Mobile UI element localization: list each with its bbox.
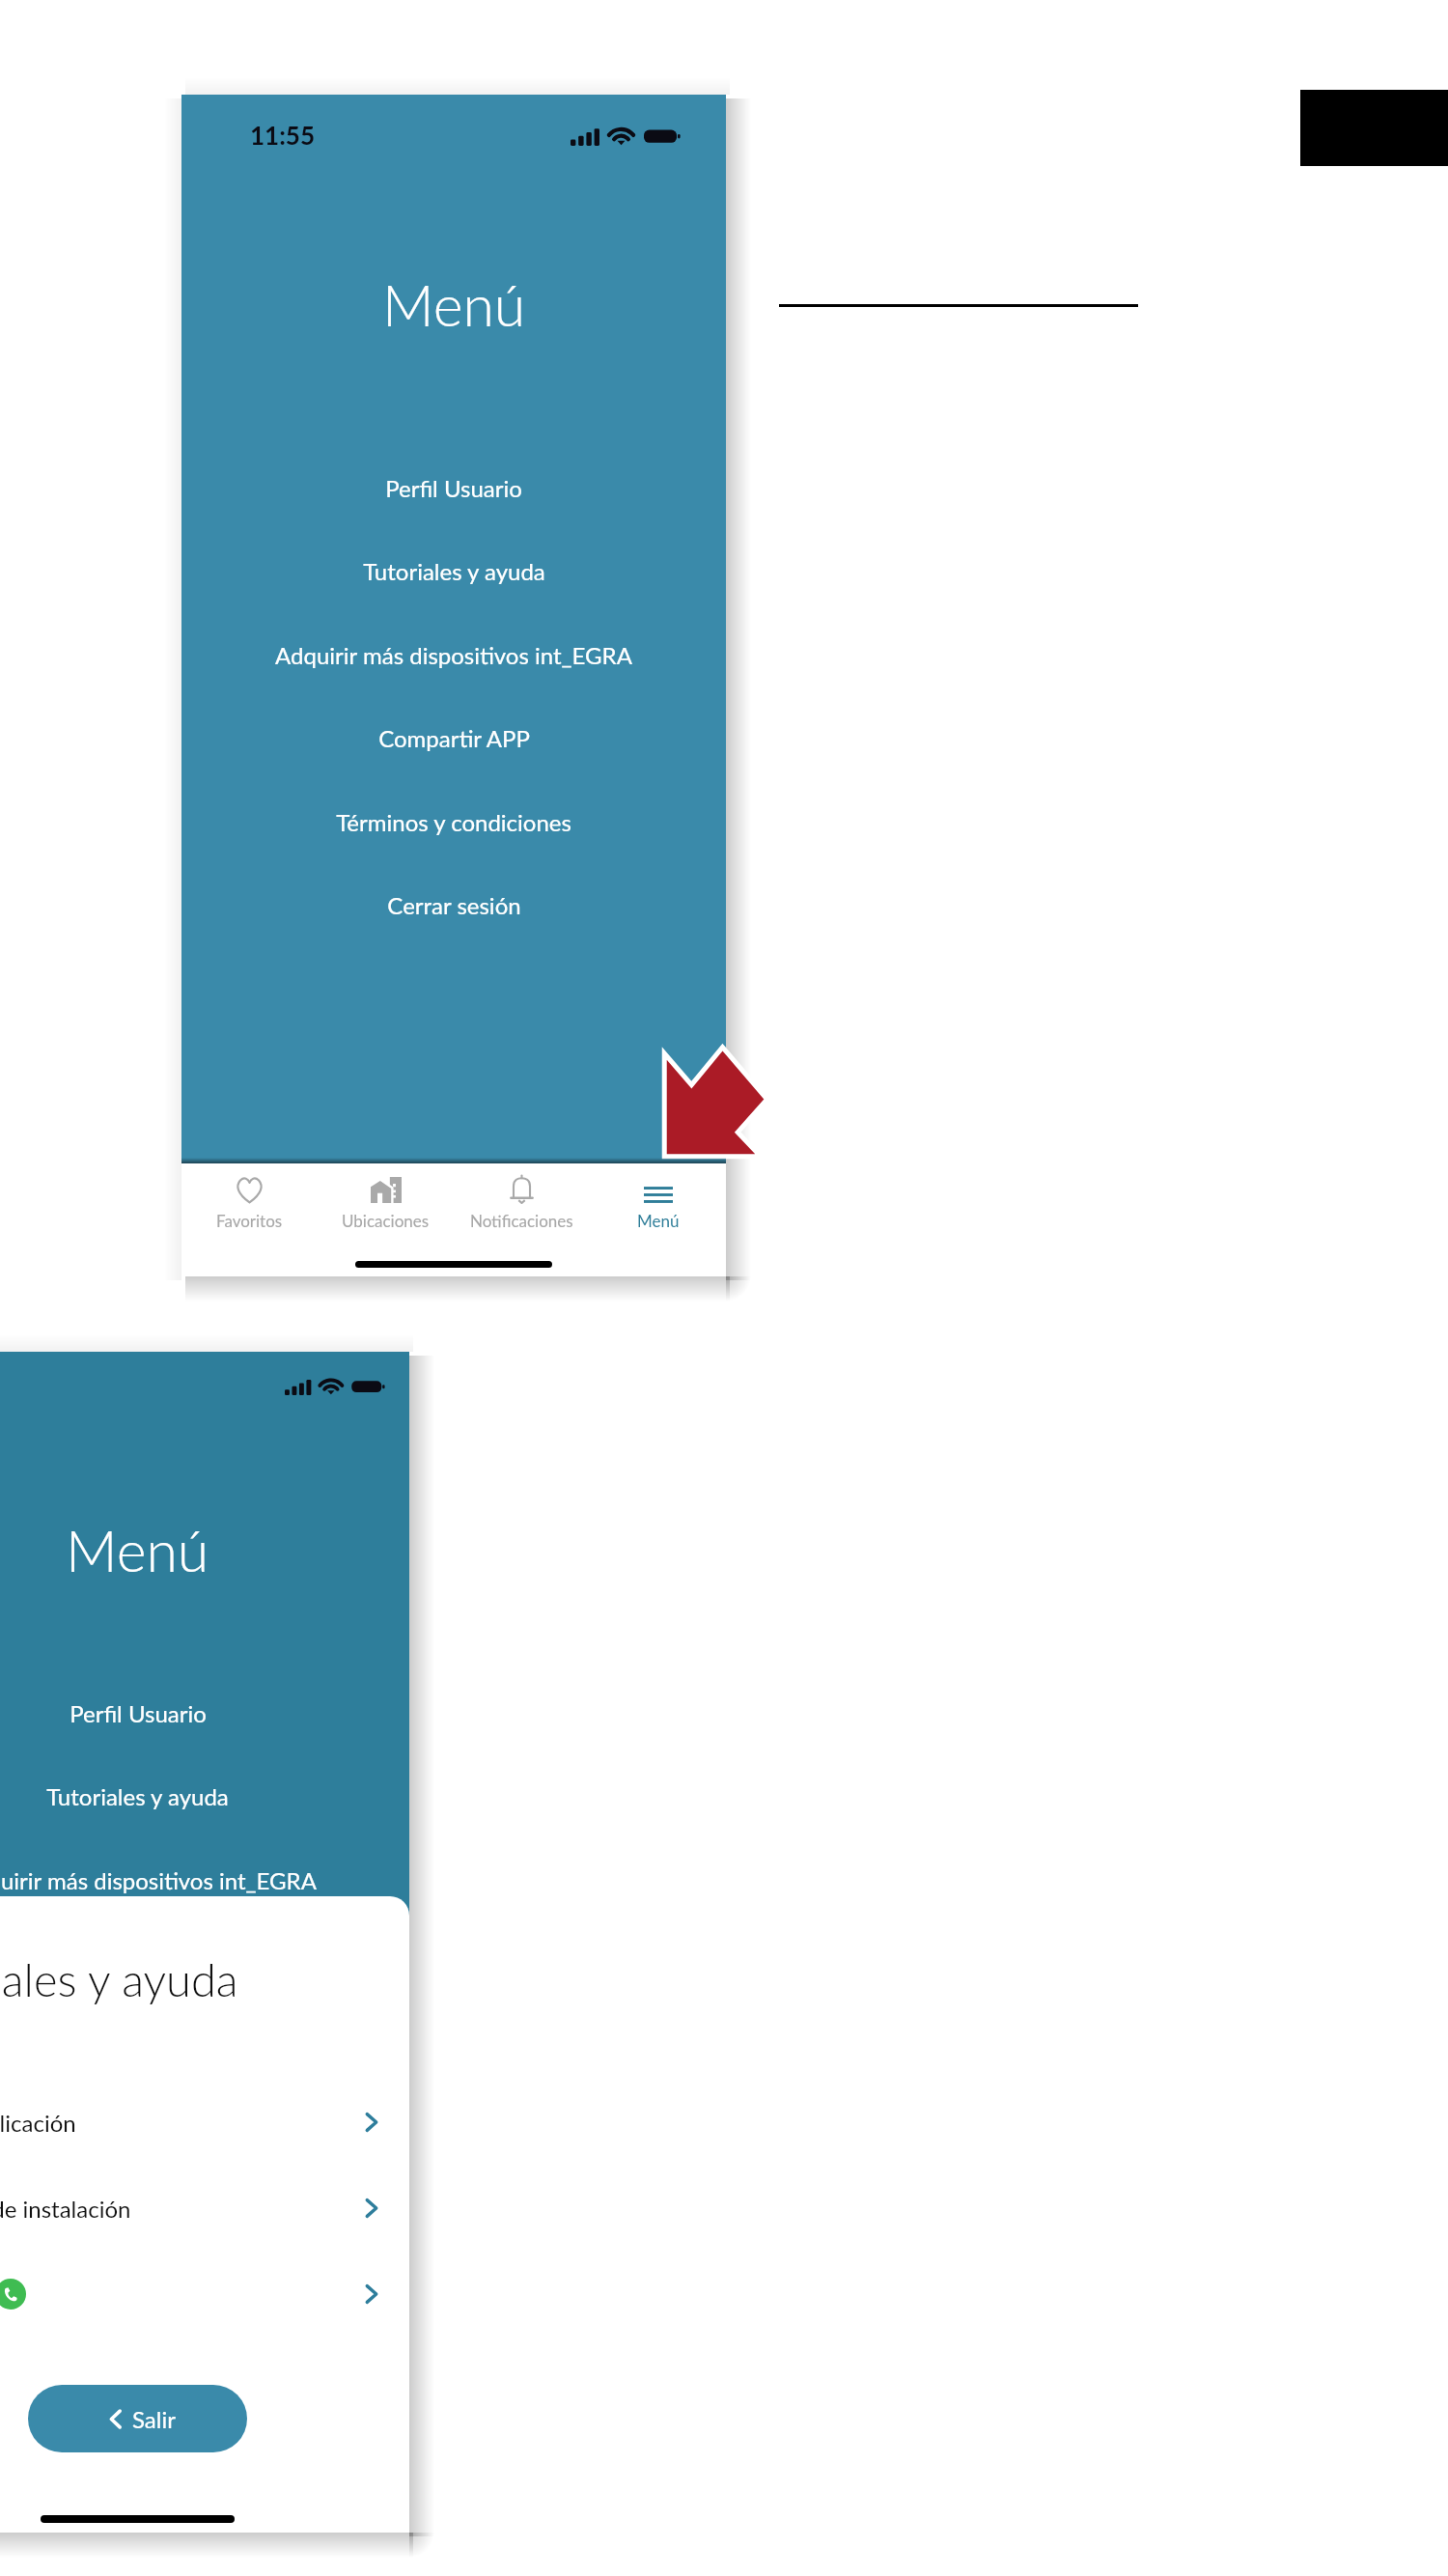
other: Pointer to Menu tab	[663, 1049, 766, 1157]
button[interactable]: Favoritos	[181, 1163, 318, 1230]
staticText: Ubicaciones	[342, 1211, 430, 1230]
staticText: Salir	[132, 2405, 176, 2433]
staticText: Adquirir más dispositivos int_EGRA	[275, 641, 632, 669]
staticText: Menú	[382, 270, 526, 339]
staticText: Perfil Usuario	[70, 1699, 207, 1727]
staticText: Tutoriales y ayuda	[46, 1782, 229, 1810]
button[interactable]: Adquirir más dispositivos int_EGRA	[181, 613, 726, 696]
button[interactable]: Cerrar sesión	[181, 863, 726, 946]
button[interactable]: Notificaciones	[454, 1163, 590, 1230]
button[interactable]: Compartir APP	[181, 696, 726, 779]
staticText: Términos y condiciones	[336, 808, 571, 836]
staticText: 11:55	[250, 120, 316, 150]
button[interactable]: Términos y condiciones	[181, 780, 726, 863]
button[interactable]: Ubicaciones	[318, 1163, 454, 1230]
button[interactable]: Video tutorial de instalación	[0, 2170, 409, 2247]
staticText: Menú	[66, 1516, 209, 1584]
button[interactable]: Salir	[28, 2385, 247, 2452]
staticText: Menú	[637, 1211, 680, 1230]
staticText: Favoritos	[216, 1211, 283, 1230]
staticText: Cerrar sesión	[387, 891, 521, 919]
staticText: Video tutorial aplicación	[0, 2109, 76, 2137]
staticText: Notificaciones	[470, 1211, 573, 1230]
staticText: Video tutorial de instalación	[0, 2195, 131, 2223]
button[interactable]: Contacto WhatsApp	[0, 2255, 409, 2333]
button[interactable]: Tutoriales y ayuda	[0, 1754, 409, 1837]
staticText: Perfil Usuario	[385, 474, 522, 502]
staticText: Tutoriales y ayuda	[363, 557, 545, 585]
staticText: Adquirir más dispositivos int_EGRA	[0, 1866, 317, 1894]
button[interactable]: Tutoriales y ayuda	[181, 529, 726, 612]
button[interactable]: Video tutorial aplicación	[0, 2084, 409, 2161]
button[interactable]: Perfil Usuario	[0, 1671, 409, 1754]
button[interactable]: Perfil Usuario	[181, 446, 726, 529]
staticText: Compartir APP	[378, 724, 530, 752]
button[interactable]: Menú	[590, 1163, 726, 1230]
button[interactable]: Adquirir más dispositivos int_EGRA	[0, 1838, 409, 1921]
staticText: Tutoriales y ayuda	[0, 1952, 238, 2006]
